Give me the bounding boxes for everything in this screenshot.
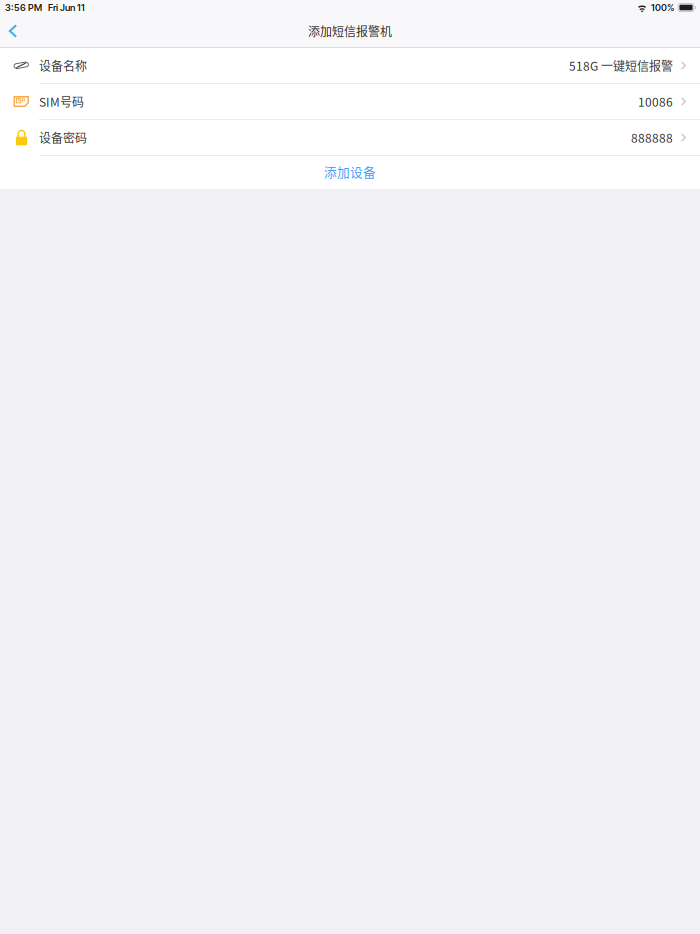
staticText: Fri Jun 11 xyxy=(48,2,85,13)
staticText: 添加短信报警机 xyxy=(308,22,392,40)
button[interactable]: 设备密码 xyxy=(0,120,700,156)
button[interactable]: 添加设备 xyxy=(0,156,700,189)
staticText: 100% xyxy=(651,2,675,13)
button[interactable]: SIM号码 xyxy=(0,84,700,120)
button[interactable]: 设备名称 xyxy=(0,48,700,84)
staticText: 888888 xyxy=(631,129,673,146)
staticText: 10086 xyxy=(638,93,673,110)
staticText: 设备密码 xyxy=(39,129,87,146)
staticText: 518G 一键短信报警 xyxy=(569,57,673,74)
staticText: 设备名称 xyxy=(39,57,87,74)
staticText: SIM号码 xyxy=(39,93,84,110)
staticText: 3:56 PM xyxy=(5,2,42,13)
button[interactable]: Back xyxy=(0,15,33,47)
staticText: 添加设备 xyxy=(324,162,376,181)
